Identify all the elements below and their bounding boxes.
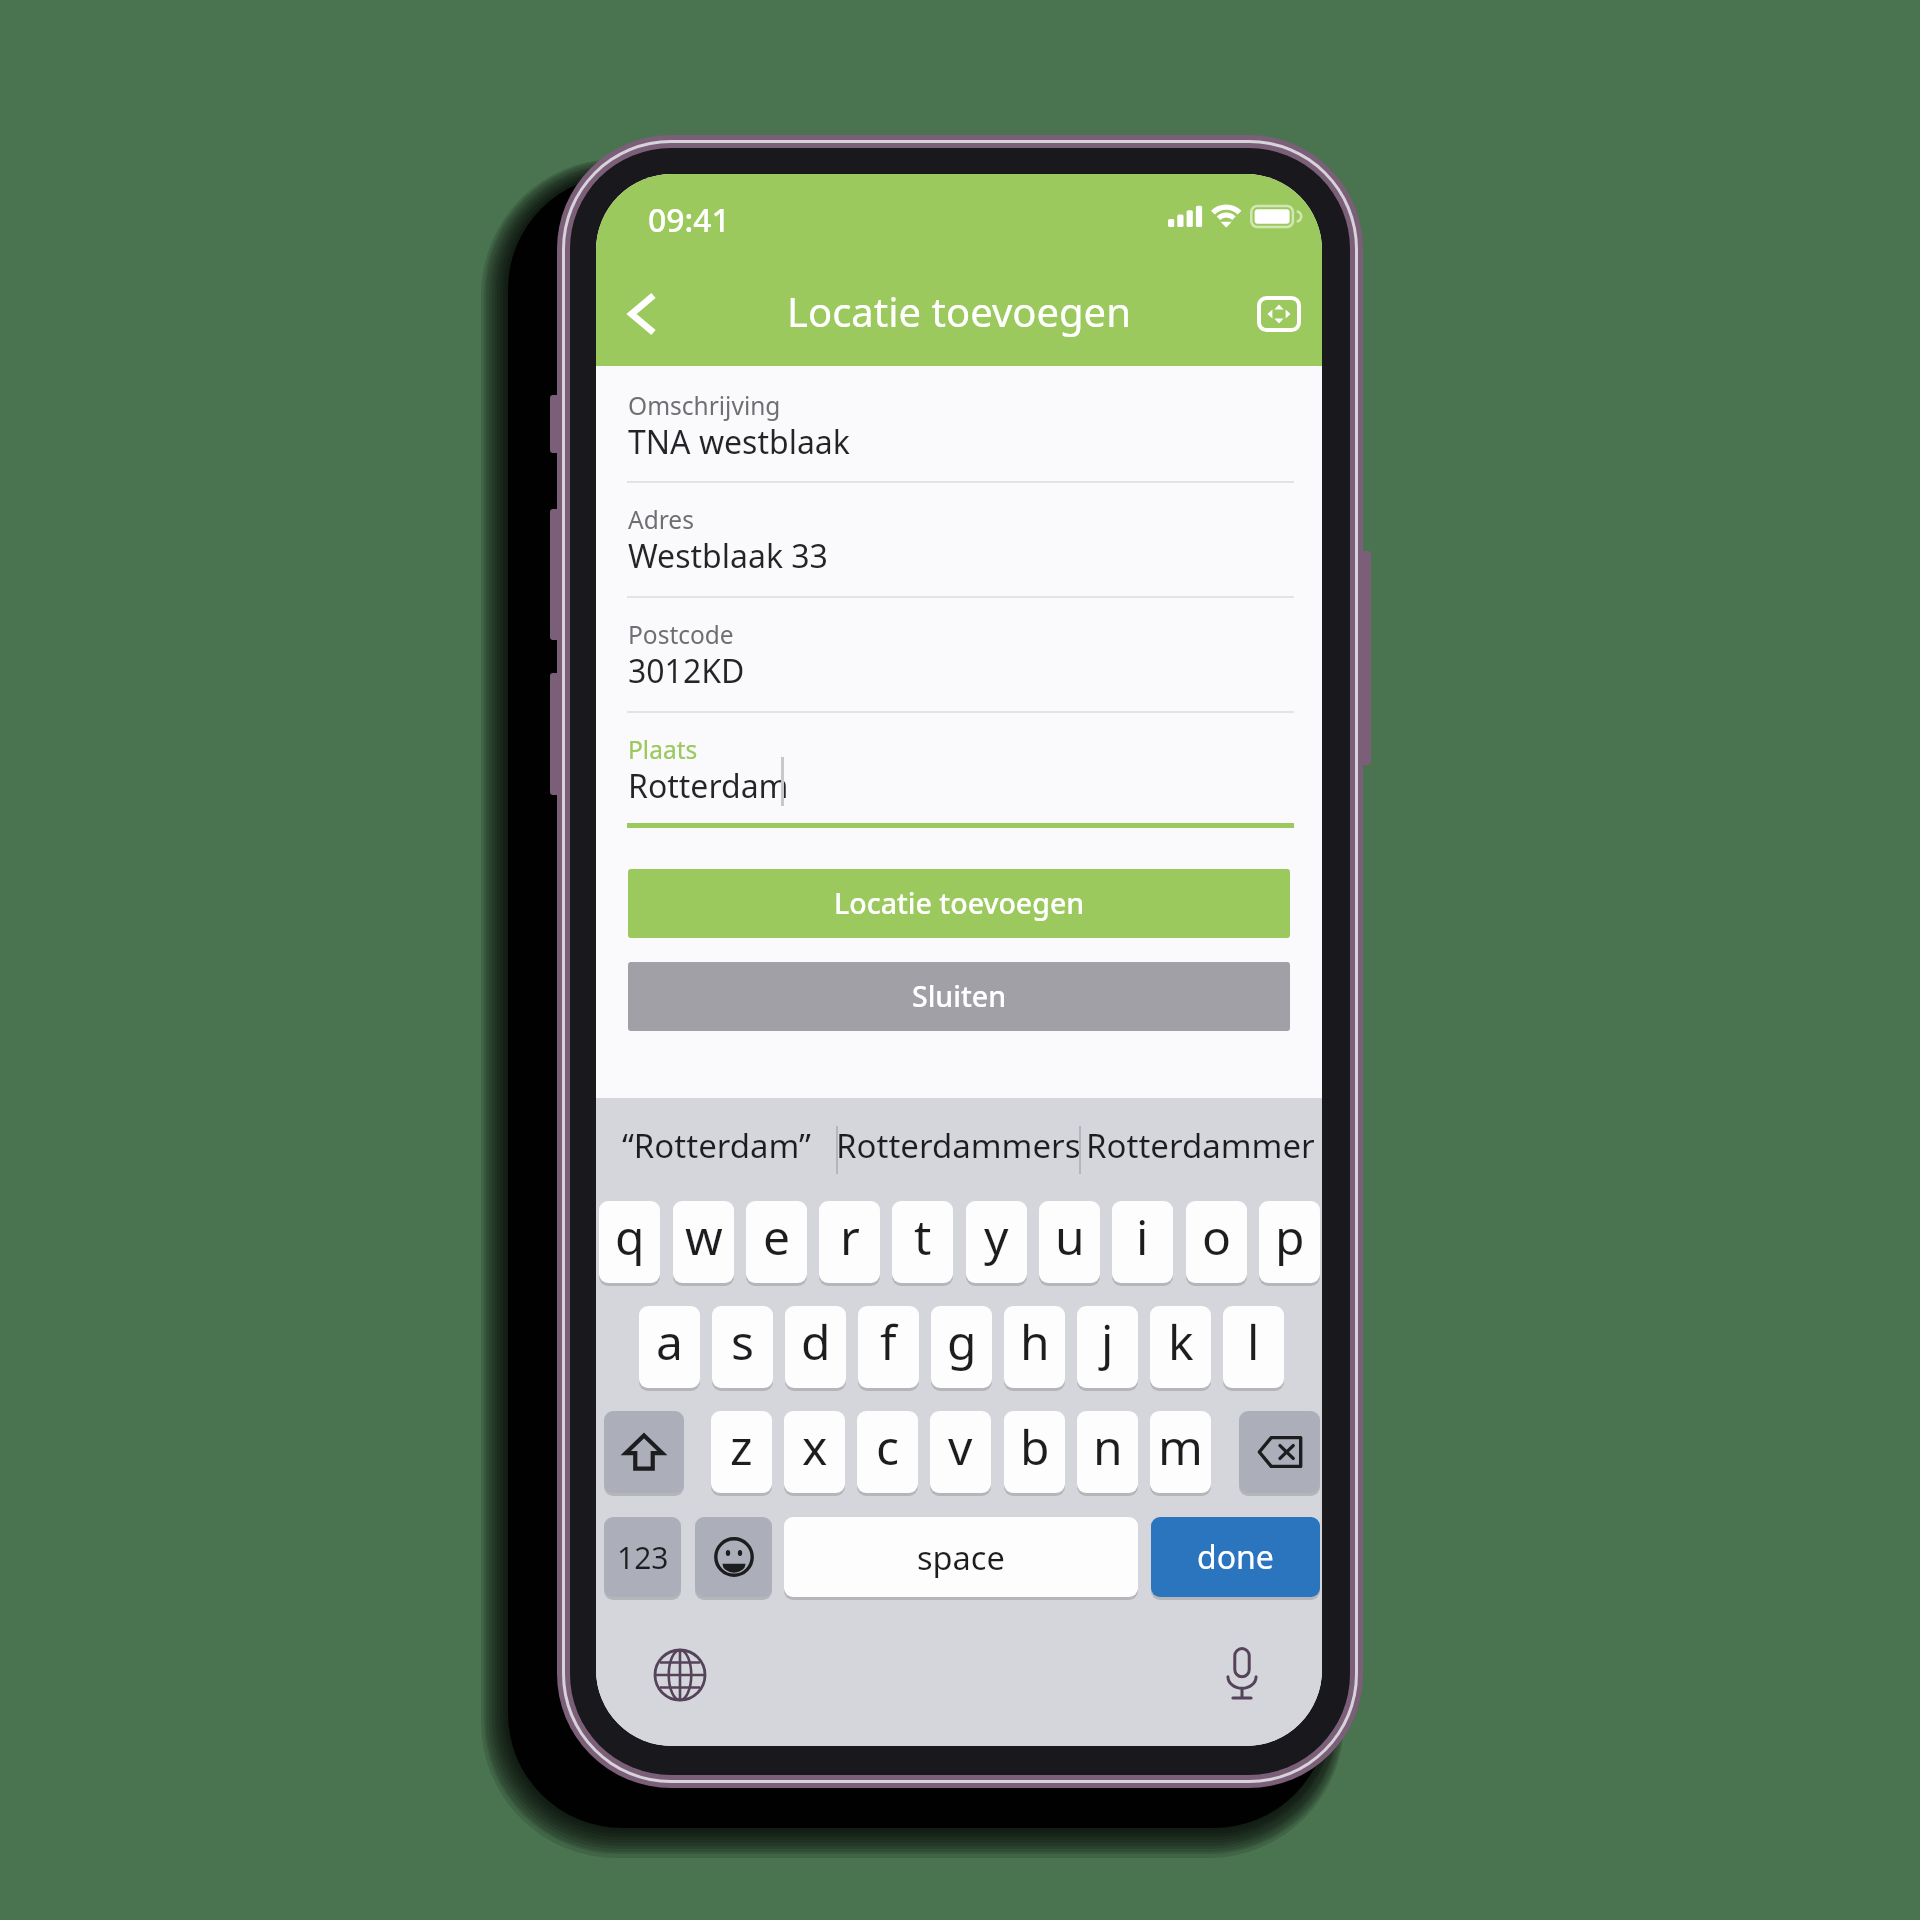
button[interactable]: space (784, 1517, 1138, 1597)
button[interactable]: p (1259, 1201, 1320, 1283)
button[interactable]: f (858, 1306, 919, 1388)
button[interactable]: Rotterdammers (836, 1107, 1079, 1183)
staticText: Omschrijving (628, 389, 781, 422)
button[interactable]: Dictation (1212, 1643, 1272, 1703)
button[interactable]: “Rotterdam” (596, 1107, 836, 1183)
staticText: 123 (617, 1537, 669, 1578)
button[interactable] (627, 598, 1294, 712)
staticText: Locatie toevoegen (787, 284, 1131, 338)
staticText: r (840, 1204, 860, 1269)
staticText: Rotterdammer (1086, 1123, 1315, 1168)
button[interactable] (627, 483, 1294, 597)
button[interactable]: l (1223, 1306, 1284, 1388)
staticText: c (876, 1414, 900, 1479)
button[interactable]: k (1150, 1306, 1211, 1388)
staticText: d (801, 1309, 831, 1374)
button[interactable]: u (1039, 1201, 1100, 1283)
button[interactable]: q (599, 1201, 660, 1283)
button[interactable]: y (966, 1201, 1027, 1283)
staticText: o (1202, 1204, 1232, 1269)
staticText: Sluiten (912, 977, 1007, 1016)
button[interactable]: b (1004, 1411, 1065, 1493)
staticText: g (947, 1309, 977, 1374)
staticText: s (731, 1309, 754, 1374)
staticText: y (984, 1204, 1009, 1269)
button[interactable]: c (857, 1411, 918, 1493)
staticText: e (763, 1204, 791, 1269)
staticText: Postcode (628, 618, 734, 651)
button[interactable]: g (931, 1306, 992, 1388)
button[interactable]: i (1112, 1201, 1173, 1283)
staticText: 09:41 (648, 198, 730, 242)
staticText: TNA westblaak (628, 420, 850, 464)
button[interactable] (627, 368, 1294, 483)
button[interactable]: done (1151, 1517, 1320, 1597)
button[interactable]: 123 (604, 1517, 681, 1597)
staticText: a (656, 1309, 683, 1374)
staticText: Plaats (628, 733, 698, 766)
button[interactable]: a (639, 1306, 700, 1388)
button[interactable]: z (711, 1411, 772, 1493)
button[interactable]: h (1004, 1306, 1065, 1388)
button[interactable] (627, 713, 1294, 829)
button[interactable]: t (892, 1201, 953, 1283)
button[interactable]: Scan code (1245, 280, 1313, 348)
staticText: x (802, 1414, 828, 1479)
button[interactable]: v (930, 1411, 991, 1493)
staticText: w (685, 1204, 723, 1269)
staticText: q (615, 1204, 645, 1269)
staticText: 3012KD (628, 649, 745, 693)
staticText: v (948, 1414, 973, 1479)
button[interactable]: s (712, 1306, 773, 1388)
staticText: space (917, 1535, 1005, 1579)
staticText: n (1093, 1414, 1123, 1479)
button[interactable]: Sluiten (628, 962, 1290, 1031)
button[interactable]: Back (608, 280, 676, 348)
staticText: m (1158, 1414, 1203, 1479)
staticText: Rotterdammers (836, 1123, 1079, 1168)
button[interactable]: n (1077, 1411, 1138, 1493)
button[interactable]: Rotterdammer (1079, 1107, 1322, 1183)
button[interactable]: o (1186, 1201, 1247, 1283)
staticText: j (1101, 1309, 1114, 1374)
button[interactable]: Locatie toevoegen (628, 869, 1290, 938)
staticText: z (730, 1414, 753, 1479)
button[interactable]: j (1077, 1306, 1138, 1388)
staticText: i (1136, 1204, 1149, 1269)
button[interactable]: w (673, 1201, 734, 1283)
staticText: l (1247, 1309, 1260, 1374)
button[interactable]: Emoji keyboard (695, 1517, 772, 1597)
staticText: “Rotterdam” (622, 1123, 811, 1168)
button[interactable]: Backspace (1239, 1411, 1320, 1493)
staticText: h (1020, 1309, 1050, 1374)
button[interactable]: m (1150, 1411, 1211, 1493)
button[interactable]: Change keyboard (650, 1645, 710, 1705)
staticText: b (1020, 1414, 1050, 1479)
staticText: Rotterdam (628, 764, 789, 808)
button[interactable]: e (746, 1201, 807, 1283)
staticText: u (1055, 1204, 1085, 1269)
staticText: Locatie toevoegen (834, 884, 1085, 923)
staticText: Adres (628, 503, 694, 536)
button[interactable]: x (784, 1411, 845, 1493)
staticText: f (880, 1309, 897, 1374)
button[interactable]: Shift (604, 1411, 684, 1493)
button[interactable]: d (785, 1306, 846, 1388)
staticText: p (1275, 1204, 1305, 1269)
staticText: done (1197, 1535, 1274, 1579)
staticText: k (1168, 1309, 1194, 1374)
button[interactable]: r (819, 1201, 880, 1283)
staticText: Westblaak 33 (628, 534, 828, 578)
staticText: t (914, 1204, 932, 1269)
